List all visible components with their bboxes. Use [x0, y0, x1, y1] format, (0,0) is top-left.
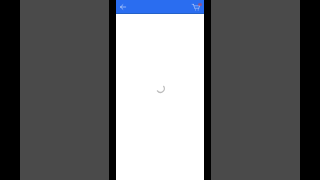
button[interactable]: Navigate up — [116, 0, 129, 13]
button[interactable]: Shopping cart — [191, 0, 204, 13]
